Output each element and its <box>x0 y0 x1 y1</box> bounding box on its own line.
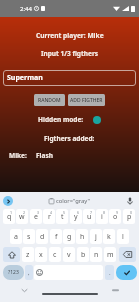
staticText: . <box>109 269 111 277</box>
button[interactable]: color="gray" <box>49 197 90 205</box>
button[interactable]: b <box>77 247 89 262</box>
staticText: v <box>67 250 71 260</box>
staticText: RANDOM <box>38 97 61 104</box>
button[interactable]: 8 <box>96 209 108 224</box>
button[interactable]: Voice input <box>125 196 135 206</box>
button[interactable]: n <box>90 247 102 262</box>
staticText: q <box>7 212 12 222</box>
staticText: Hidden mode: <box>38 115 84 124</box>
staticText: z <box>26 250 30 260</box>
button[interactable]: 6 <box>70 209 82 224</box>
staticText: 8 <box>103 210 106 215</box>
button[interactable]: 9 <box>109 209 121 224</box>
staticText: Input 1/3 figthers <box>41 49 99 58</box>
button[interactable]: 4 <box>43 209 55 224</box>
staticText: j <box>95 232 97 242</box>
button[interactable]: Hidden mode toggle <box>93 116 101 124</box>
staticText: 0 <box>130 210 133 215</box>
button[interactable]: l <box>117 229 129 244</box>
staticText: a <box>14 232 18 242</box>
button[interactable]: j <box>90 229 102 244</box>
button[interactable]: ADD FIGTHER <box>68 94 105 106</box>
button[interactable]: k <box>103 229 115 244</box>
button[interactable]: 0 <box>123 209 135 224</box>
button[interactable]: 5 <box>56 209 68 224</box>
button[interactable]: g <box>63 229 75 244</box>
staticText: h <box>80 232 85 242</box>
staticText: u <box>87 212 92 222</box>
button[interactable]: Expand suggestions <box>3 196 13 206</box>
button[interactable]: a <box>10 229 22 244</box>
staticText: o <box>113 212 118 222</box>
button[interactable]: Enter <box>116 265 137 280</box>
staticText: 1 <box>10 210 13 215</box>
button[interactable]: 7 <box>83 209 95 224</box>
staticText: , <box>28 269 30 277</box>
button[interactable]: Emoji <box>36 269 43 276</box>
button[interactable]: s <box>23 229 35 244</box>
staticText: x <box>39 250 43 260</box>
button[interactable]: h <box>76 229 88 244</box>
button[interactable]: Hide keyboard <box>19 285 29 295</box>
button[interactable]: d <box>36 229 48 244</box>
staticText: b <box>81 250 86 260</box>
staticText: l <box>122 232 124 242</box>
button[interactable]: 2 <box>16 209 28 224</box>
staticText: g <box>67 232 72 242</box>
staticText: p <box>127 212 132 222</box>
button[interactable]: RANDOM <box>34 94 65 106</box>
button[interactable]: 1 <box>3 209 15 224</box>
staticText: s <box>27 232 31 242</box>
staticText: Flash <box>36 151 53 160</box>
button[interactable]: Space <box>34 265 103 280</box>
button[interactable]: f <box>50 229 62 244</box>
staticText: e <box>34 212 38 222</box>
staticText: 9 <box>116 210 119 215</box>
staticText: ?123 <box>8 269 19 276</box>
button[interactable]: Shift <box>3 247 20 262</box>
staticText: 6 <box>77 210 80 215</box>
staticText: y <box>74 212 78 222</box>
staticText: f <box>55 232 58 242</box>
staticText: c <box>53 250 57 260</box>
button[interactable]: Superman <box>3 70 136 86</box>
button[interactable]: v <box>63 247 75 262</box>
staticText: n <box>94 250 99 260</box>
staticText: Superman <box>7 73 43 83</box>
staticText: Figthers added: <box>44 134 95 143</box>
staticText: t <box>61 212 64 222</box>
staticText: r <box>48 212 51 222</box>
button[interactable]: z <box>22 247 34 262</box>
button[interactable]: m <box>104 247 116 262</box>
button[interactable]: c <box>49 247 61 262</box>
staticText: color="gray" <box>56 197 90 205</box>
button[interactable]: x <box>35 247 47 262</box>
button[interactable]: 3 <box>30 209 42 224</box>
staticText: ADD FIGTHER <box>70 97 103 104</box>
staticText: 2 <box>23 210 26 215</box>
staticText: m <box>107 250 114 260</box>
staticText: w <box>19 212 25 222</box>
staticText: 5 <box>63 210 66 215</box>
button[interactable]: Backspace <box>119 247 136 262</box>
staticText: 3 <box>37 210 40 215</box>
button[interactable]: ?123 <box>3 265 24 280</box>
staticText: i <box>101 212 103 222</box>
button[interactable]: , <box>25 265 33 280</box>
staticText: d <box>40 232 45 242</box>
staticText: k <box>107 232 111 242</box>
staticText: 2:44 <box>20 5 32 13</box>
button[interactable]: Switch input method <box>110 285 120 295</box>
staticText: Mike: <box>9 151 27 160</box>
button[interactable]: . <box>105 265 114 280</box>
staticText: Current player: Mike <box>36 31 104 40</box>
staticText: 7 <box>90 210 93 215</box>
staticText: 4 <box>50 210 53 215</box>
